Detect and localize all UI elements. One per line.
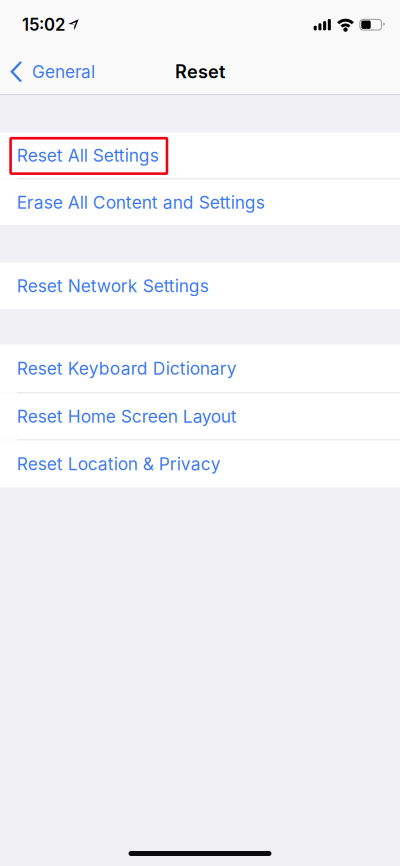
button[interactable]: General [0, 49, 107, 94]
button[interactable]: Reset All Settings [0, 132, 400, 178]
staticText: Reset Location & Privacy [17, 453, 221, 474]
staticText: Reset Home Screen Layout [17, 406, 237, 427]
staticText: Reset [175, 61, 225, 83]
staticText: 15:02 [22, 15, 65, 35]
button[interactable]: Reset Keyboard Dictionary [0, 344, 400, 392]
staticText: Reset All Settings [17, 145, 159, 166]
staticText: Reset Network Settings [17, 275, 209, 296]
button[interactable]: Reset Location & Privacy [0, 440, 400, 487]
button[interactable]: Reset Network Settings [0, 262, 400, 309]
staticText: Erase All Content and Settings [17, 192, 265, 213]
staticText: Reset Keyboard Dictionary [17, 358, 237, 379]
staticText: General [32, 61, 95, 82]
button[interactable]: Erase All Content and Settings [0, 179, 400, 225]
button[interactable]: Reset Home Screen Layout [0, 393, 400, 439]
